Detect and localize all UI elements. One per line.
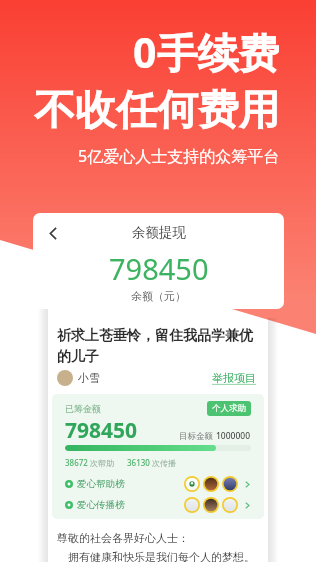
staticText: 目标金额 (179, 430, 216, 442)
staticText: 0手续费 (133, 24, 280, 80)
staticText: 举报项目 (212, 371, 256, 385)
staticText: 拥有健康和快乐是我们每个人的梦想。当你过 (68, 550, 264, 562)
staticText: 个人求助 (212, 403, 246, 414)
button[interactable]: Back (37, 217, 69, 249)
button[interactable]: 爱心传播榜 (65, 497, 251, 513)
staticText: 36130 (127, 457, 150, 468)
staticText: 38672 (65, 457, 88, 468)
staticText: 已筹金额 (65, 403, 101, 414)
staticText: 小雪 (78, 371, 100, 385)
staticText: 余额（元） (131, 289, 186, 303)
staticText: 爱心传播榜 (77, 499, 125, 511)
staticText: 次传播 (150, 457, 177, 468)
staticText: 不收任何费用 (34, 85, 280, 137)
staticText: 爱心帮助榜 (77, 478, 125, 490)
button[interactable]: 爱心帮助榜 (65, 476, 251, 492)
button[interactable]: 举报项目 (212, 371, 256, 385)
staticText: 尊敬的社会各界好心人士： (57, 531, 189, 545)
staticText: 祈求上苍垂怜，留住我品学兼优的儿子 (57, 327, 256, 365)
staticText: 5亿爱心人士支持的众筹平台 (78, 145, 280, 167)
staticText: 次帮助 (88, 457, 115, 468)
staticText: 1000000 (216, 430, 251, 442)
staticText: 798450 (109, 249, 209, 288)
staticText: 798450 (65, 416, 138, 445)
staticText: 余额提现 (132, 224, 186, 241)
